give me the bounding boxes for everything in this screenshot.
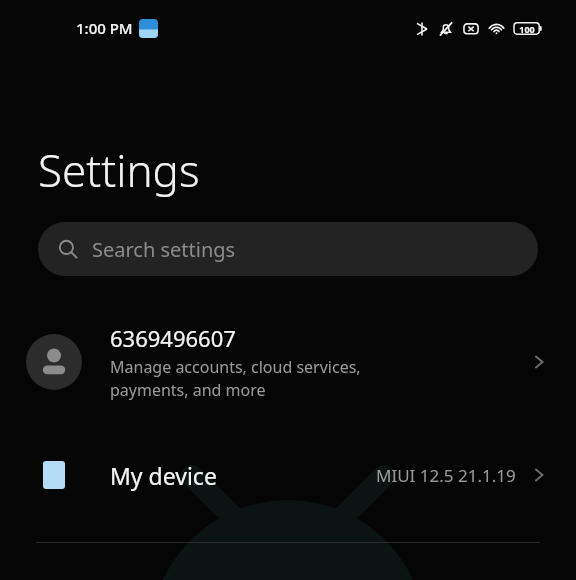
other: Open: [528, 351, 550, 373]
staticText: 6369496607: [110, 323, 236, 353]
staticText: 100: [519, 23, 535, 35]
staticText: Search settings: [92, 236, 236, 263]
staticText: Manage accounts, cloud services, payment…: [110, 356, 361, 401]
button[interactable]: 6369496607: [0, 317, 576, 407]
button[interactable]: My device: [0, 441, 576, 509]
other: Open: [528, 464, 550, 486]
staticText: 1:00 PM: [76, 18, 133, 38]
button[interactable]: Search settings: [38, 222, 538, 276]
staticText: MIUI 12.5 21.1.19: [376, 464, 516, 487]
staticText: Settings: [38, 140, 200, 200]
staticText: My device: [110, 460, 376, 491]
